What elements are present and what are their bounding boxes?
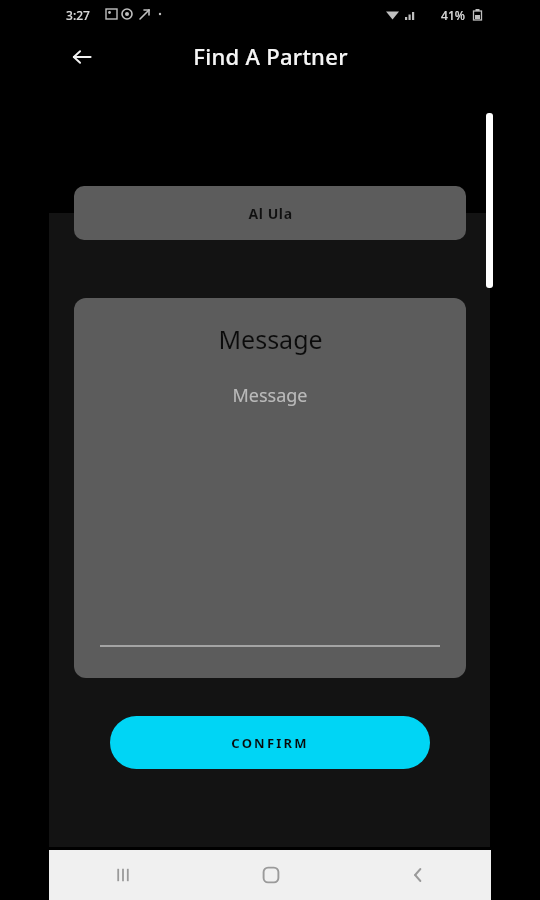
button[interactable]: Al Ula [74,186,466,240]
staticText: Message [232,383,308,408]
staticText: 3:27 [66,7,90,23]
button[interactable]: Home [197,850,344,900]
button[interactable]: Recents [49,850,197,900]
staticText: Al Ula [248,204,293,223]
staticText: 41% [441,7,465,23]
staticText: Message [218,322,323,356]
staticText: CONFIRM [231,734,309,752]
button[interactable]: CONFIRM [110,716,430,769]
button[interactable]: Message [74,298,466,678]
button[interactable]: Back [58,33,106,81]
button[interactable]: Back [344,850,491,900]
staticText: Find A Partner [193,41,348,71]
